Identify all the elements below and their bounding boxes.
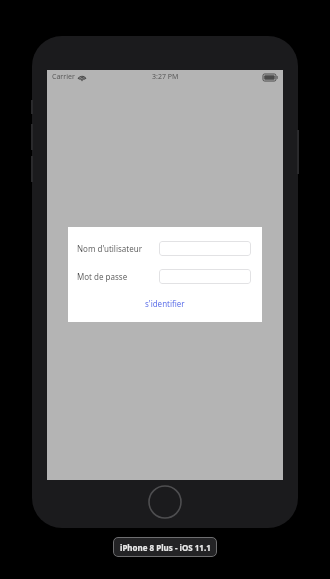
button[interactable]: s'identifier [139,296,191,311]
button[interactable] [159,269,251,284]
staticText: Mot de passe [77,271,128,282]
button[interactable]: Home [148,485,182,519]
staticText: 3:27 PM [152,72,179,82]
button[interactable] [159,241,251,256]
staticText: s'identifier [145,298,185,309]
staticText: iPhone 8 Plus - iOS 11.1 [120,542,211,553]
staticText: Carrier [52,72,75,82]
staticText: Nom d'utilisateur [77,243,142,254]
